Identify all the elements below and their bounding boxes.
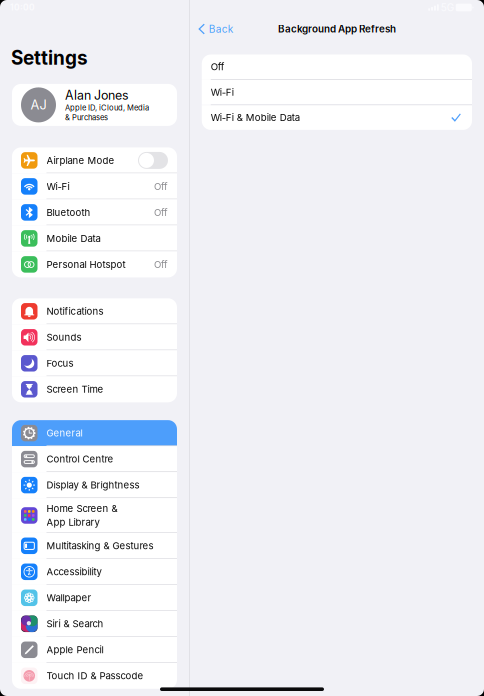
staticText: Off <box>154 181 168 192</box>
staticText: Wi-Fi <box>46 181 69 192</box>
button[interactable]: AJ <box>12 84 177 126</box>
staticText: Settings <box>11 46 88 69</box>
staticText: Bluetooth <box>46 207 90 218</box>
staticText: Multitasking & Gestures <box>46 540 153 552</box>
staticText: Wallpaper <box>46 592 91 604</box>
staticText: Screen Time <box>46 383 103 395</box>
button[interactable]: Multitasking & Gestures <box>12 533 177 559</box>
button[interactable]: Wi-Fi <box>202 80 472 104</box>
staticText: App Library <box>46 517 99 528</box>
staticText: Apple ID, iCloud, Media <box>65 103 149 112</box>
button[interactable]: Notifications <box>12 298 177 324</box>
staticText: Mobile Data <box>46 233 100 244</box>
button[interactable]: Wi-Fi & Mobile Data <box>202 105 472 130</box>
staticText: Home Screen & <box>46 503 117 514</box>
staticText: 10:00 <box>10 2 35 12</box>
staticText: Siri & Search <box>46 618 103 630</box>
staticText: Off <box>211 61 225 73</box>
staticText: Notifications <box>46 305 103 317</box>
staticText: Display & Brightness <box>46 479 139 491</box>
button[interactable]: Touch ID & Passcode <box>12 663 177 689</box>
button[interactable]: General <box>12 420 177 446</box>
staticText: Off <box>154 207 168 218</box>
button[interactable]: Display & Brightness <box>12 472 177 498</box>
button[interactable]: Wi-Fi <box>12 173 177 199</box>
button[interactable]: Control Centre <box>12 446 177 472</box>
button[interactable]: Wallpaper <box>12 585 177 611</box>
button[interactable]: Sounds <box>12 324 177 350</box>
staticText: Touch ID & Passcode <box>46 670 143 682</box>
staticText: General <box>46 427 82 439</box>
button[interactable]: Screen Time <box>12 376 177 402</box>
button[interactable]: Back <box>190 15 243 43</box>
staticText: Accessibility <box>46 566 101 578</box>
button[interactable]: Off <box>202 54 472 79</box>
button[interactable]: Mobile Data <box>12 225 177 251</box>
staticText: Wi-Fi <box>211 86 234 98</box>
staticText: Background App Refresh <box>278 23 396 35</box>
button[interactable]: Home Screen & <box>12 498 177 533</box>
button[interactable]: Apple Pencil <box>12 637 177 663</box>
staticText: Airplane Mode <box>46 155 114 166</box>
staticText: Apple Pencil <box>46 644 103 656</box>
staticText: & Purchases <box>65 113 108 122</box>
staticText: Personal Hotspot <box>46 259 125 270</box>
button[interactable]: Accessibility <box>12 559 177 585</box>
button[interactable]: Focus <box>12 350 177 376</box>
button[interactable]: Bluetooth <box>12 199 177 225</box>
button[interactable]: Airplane Mode <box>12 147 177 173</box>
button[interactable]: Siri & Search <box>12 611 177 637</box>
staticText: Focus <box>46 357 73 369</box>
staticText: AJ <box>30 97 46 113</box>
staticText: Alan Jones <box>65 88 129 103</box>
staticText: Off <box>154 259 168 270</box>
staticText: Sounds <box>46 331 81 343</box>
staticText: Back <box>209 23 234 35</box>
button[interactable]: Personal Hotspot <box>12 251 177 277</box>
staticText: Wi-Fi & Mobile Data <box>211 112 300 123</box>
staticText: Control Centre <box>46 453 113 465</box>
